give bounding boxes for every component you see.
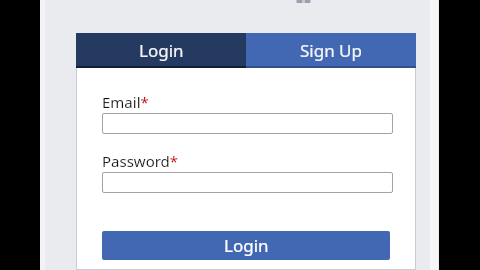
button[interactable]: Login <box>76 33 246 67</box>
staticText: Email* <box>102 92 149 112</box>
button[interactable] <box>102 113 393 134</box>
button[interactable] <box>102 172 393 193</box>
staticText: Login <box>224 234 269 257</box>
staticText: Login <box>139 39 184 62</box>
button[interactable]: Sign Up <box>246 33 416 67</box>
button[interactable]: Login <box>102 231 390 260</box>
staticText: Sign Up <box>300 39 362 62</box>
staticText: Password* <box>102 151 179 171</box>
